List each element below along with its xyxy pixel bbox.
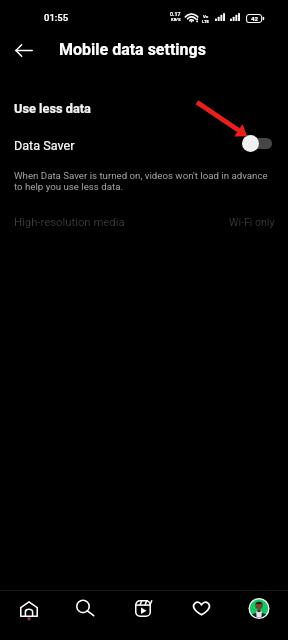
button[interactable]: Reels [114,591,172,640]
button[interactable]: Data Saver toggle, off [242,133,272,153]
staticText: Wi-Fi only [229,216,275,228]
staticText: High-resolution media [14,216,125,229]
staticText: Vo [203,14,209,19]
staticText: 01:55 [44,12,69,23]
button[interactable]: Data Saver [0,132,288,158]
staticText: When Data Saver is turned on, videos won… [14,170,268,192]
staticText: 42 [251,15,259,22]
button[interactable]: Search [57,591,114,640]
staticText: KB/S [171,17,181,22]
button[interactable]: Back [3,30,43,70]
button[interactable]: Profile [230,591,288,640]
staticText: Use less data [14,101,91,116]
staticText: Mobile data settings [59,40,206,59]
staticText: LTE [202,19,210,24]
button[interactable]: Home [0,591,57,640]
staticText: Data Saver [14,138,75,153]
button[interactable]: Activity [172,591,230,640]
staticText: 0.17 [170,11,181,17]
